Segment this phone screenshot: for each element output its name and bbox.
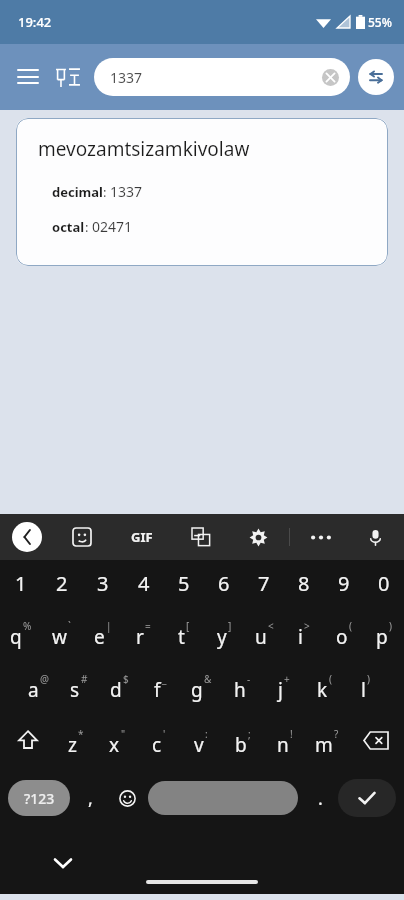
button[interactable]: 1337 xyxy=(94,58,350,96)
button[interactable]: s xyxy=(58,658,99,711)
button[interactable]: 2 xyxy=(41,560,82,606)
button[interactable]: d xyxy=(99,658,140,711)
button[interactable]: p xyxy=(364,606,404,658)
button[interactable]: i xyxy=(284,606,324,658)
staticText: ' xyxy=(163,727,166,741)
button[interactable]: Settings xyxy=(243,522,273,552)
button[interactable]: 3 xyxy=(82,560,123,606)
button[interactable]: l xyxy=(345,658,386,711)
staticText: [ xyxy=(186,619,190,633)
button[interactable]: w xyxy=(41,606,82,658)
staticText: 7 xyxy=(258,570,270,597)
staticText: d xyxy=(110,677,122,703)
button[interactable]: j xyxy=(263,658,304,711)
button[interactable]: h xyxy=(222,658,263,711)
staticText: @ xyxy=(40,672,49,686)
button[interactable]: ?123 xyxy=(8,780,70,816)
button[interactable]: mevozamtsizamkivolaw xyxy=(16,118,388,266)
button[interactable]: Shift xyxy=(0,711,55,769)
staticText: ] xyxy=(228,619,232,633)
button[interactable]: Translate xyxy=(186,522,216,552)
button[interactable]: e xyxy=(82,606,123,658)
button[interactable]: x xyxy=(96,711,138,769)
staticText: ` xyxy=(68,619,71,633)
button[interactable]: c xyxy=(138,711,180,769)
button[interactable]: o xyxy=(324,606,364,658)
staticText: 6 xyxy=(218,570,230,597)
button[interactable]: Hide keyboard xyxy=(46,846,80,880)
staticText: 19:42 xyxy=(18,13,52,31)
staticText: p xyxy=(376,624,388,650)
staticText: * xyxy=(78,727,84,741)
staticText: - xyxy=(247,672,251,686)
button[interactable]: 4 xyxy=(123,560,164,606)
staticText: ( xyxy=(329,672,332,686)
button[interactable]: m xyxy=(306,711,348,769)
staticText: ? xyxy=(334,727,339,741)
staticText: : xyxy=(205,727,208,741)
staticText: & xyxy=(204,672,212,686)
staticText: mevozamtsizamkivolaw xyxy=(38,136,250,162)
button[interactable]: . xyxy=(302,769,338,827)
button[interactable]: 6 xyxy=(204,560,244,606)
button[interactable]: More options xyxy=(306,522,336,552)
staticText: 2 xyxy=(56,570,68,597)
staticText: v xyxy=(194,732,204,758)
staticText: 55% xyxy=(368,14,392,30)
button[interactable]: k xyxy=(304,658,345,711)
staticText: t xyxy=(178,624,185,650)
staticText: z xyxy=(68,732,77,758)
staticText: 5 xyxy=(178,570,190,597)
button[interactable]: v xyxy=(180,711,222,769)
button[interactable]: Swap languages xyxy=(358,59,394,95)
button[interactable]: 1 xyxy=(0,560,41,606)
staticText: ?123 xyxy=(24,789,55,808)
button[interactable]: 8 xyxy=(284,560,324,606)
button[interactable]: Emoji xyxy=(110,769,144,827)
button[interactable]: 0 xyxy=(364,560,404,606)
staticText: decimal xyxy=(52,183,103,201)
staticText: y xyxy=(217,624,227,650)
button[interactable]: , xyxy=(70,769,110,827)
button[interactable]: Dictionary logo xyxy=(50,59,86,95)
button[interactable]: Voice input xyxy=(360,522,390,552)
button[interactable]: GIF xyxy=(125,520,159,554)
button[interactable]: y xyxy=(204,606,244,658)
staticText: ( xyxy=(349,619,352,633)
button[interactable]: q xyxy=(0,606,41,658)
staticText: m xyxy=(315,732,333,758)
button[interactable]: 7 xyxy=(244,560,284,606)
staticText: r xyxy=(136,624,144,650)
button[interactable]: a xyxy=(18,658,58,711)
staticText: % xyxy=(23,619,32,633)
staticText: c xyxy=(152,732,162,758)
staticText: ! xyxy=(290,727,293,741)
staticText: w xyxy=(52,624,67,650)
button[interactable]: 9 xyxy=(324,560,364,606)
button[interactable]: Back xyxy=(12,522,42,552)
staticText: . xyxy=(318,786,323,811)
staticText: k xyxy=(317,677,328,703)
button[interactable]: u xyxy=(244,606,284,658)
button[interactable]: g xyxy=(181,658,222,711)
button[interactable]: n xyxy=(264,711,306,769)
button[interactable]: f xyxy=(140,658,181,711)
staticText: i xyxy=(298,624,303,650)
staticText: g xyxy=(191,677,203,703)
staticText: $ xyxy=(123,672,129,686)
button[interactable]: Done xyxy=(338,779,396,817)
button[interactable]: t xyxy=(164,606,204,658)
button[interactable]: Backspace xyxy=(348,711,404,769)
button[interactable]: b xyxy=(222,711,264,769)
button[interactable]: Stickers xyxy=(67,522,97,552)
staticText: 02471 xyxy=(92,217,133,236)
staticText: l xyxy=(361,677,366,703)
button[interactable]: Menu xyxy=(10,59,46,95)
button[interactable]: Clear xyxy=(318,65,342,89)
staticText: h xyxy=(234,677,246,703)
button[interactable]: r xyxy=(123,606,164,658)
button[interactable]: Space xyxy=(148,781,298,815)
button[interactable]: 5 xyxy=(164,560,204,606)
staticText: > xyxy=(304,619,310,633)
button[interactable]: z xyxy=(55,711,96,769)
